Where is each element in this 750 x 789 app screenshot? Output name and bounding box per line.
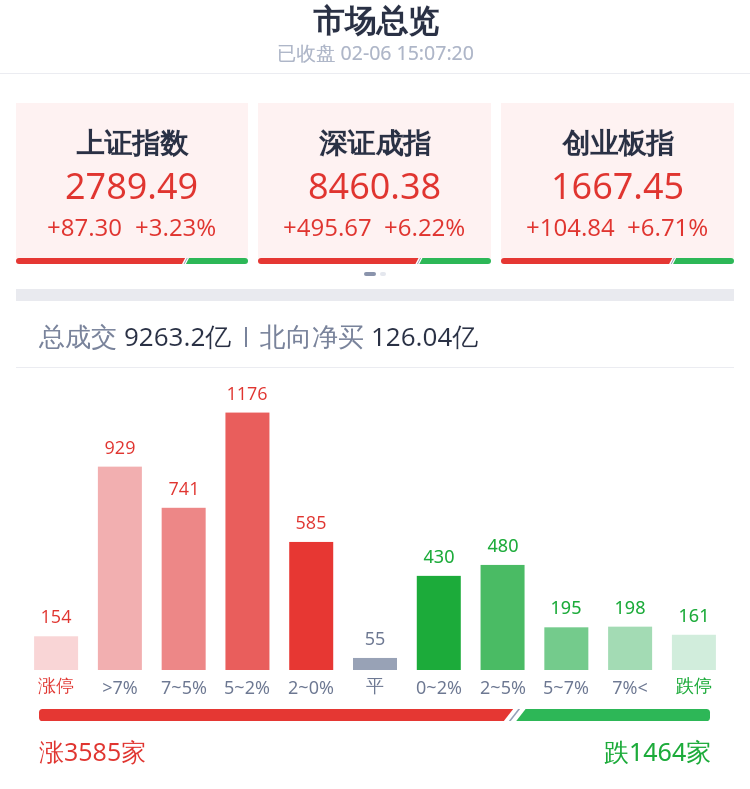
staticText: 8460.38	[308, 161, 442, 210]
staticText: 7%<	[585, 675, 675, 700]
staticText: 154	[11, 604, 101, 629]
button[interactable]: 7%<	[585, 675, 675, 700]
staticText: >7%	[75, 675, 165, 700]
button[interactable]: Page 2	[380, 272, 386, 276]
button[interactable]: 跌停	[649, 675, 739, 698]
staticText: +3.23%	[135, 210, 217, 243]
button[interactable]: 平	[330, 675, 420, 698]
staticText: 1176	[202, 381, 292, 406]
staticText: +87.30	[47, 210, 123, 243]
button[interactable]: 市场总览	[0, 0, 750, 73]
staticText: 总成交	[39, 318, 124, 354]
staticText: 2~5%	[458, 675, 548, 700]
staticText: 585	[266, 510, 356, 535]
staticText: 480	[458, 533, 548, 558]
staticText: 创业板指	[562, 126, 674, 161]
button[interactable]: 2~0%	[266, 675, 356, 700]
staticText: 0~2%	[394, 675, 484, 700]
staticText: 929	[75, 435, 165, 460]
staticText: 7~5%	[139, 675, 229, 700]
staticText: 2~0%	[266, 675, 356, 700]
button[interactable]: 2~5%	[458, 675, 548, 700]
staticText: 5~2%	[202, 675, 292, 700]
button[interactable]: 深证成指	[258, 103, 491, 264]
button[interactable]: 7~5%	[139, 675, 229, 700]
button[interactable]: 涨停	[11, 675, 101, 698]
staticText: 5~7%	[521, 675, 611, 700]
staticText: 市场总览	[313, 2, 439, 42]
staticText: 161	[649, 603, 739, 628]
staticText: 跌停	[649, 675, 739, 698]
button[interactable]: 总成交	[39, 318, 479, 354]
staticText: +6.22%	[384, 210, 466, 243]
button[interactable]: 5~2%	[202, 675, 292, 700]
staticText: 涨3585家	[39, 734, 147, 768]
staticText: 55	[330, 626, 420, 651]
staticText: 1667.45	[551, 161, 685, 210]
staticText: +6.71%	[627, 210, 709, 243]
staticText: 涨停	[11, 675, 101, 698]
button[interactable]: 涨跌家数比例	[39, 709, 710, 721]
button[interactable]: Page 1	[364, 272, 376, 276]
staticText: 深证成指	[319, 126, 431, 161]
staticText: 跌1464家	[604, 734, 712, 768]
staticText: 9263.2亿	[124, 318, 232, 354]
button[interactable]: 0~2%	[394, 675, 484, 700]
staticText: 上证指数	[76, 126, 188, 161]
button[interactable]: >7%	[75, 675, 165, 700]
staticText: 198	[585, 595, 675, 620]
staticText: +495.67	[283, 210, 372, 243]
staticText: 2789.49	[65, 161, 199, 210]
button[interactable]: 5~7%	[521, 675, 611, 700]
button[interactable]: 创业板指	[501, 103, 734, 264]
staticText: 126.04亿	[371, 318, 479, 354]
button[interactable]: 上证指数	[16, 103, 248, 264]
staticText: 已收盘 02-06 15:07:20	[277, 39, 474, 66]
staticText: 195	[521, 595, 611, 620]
staticText: 430	[394, 544, 484, 569]
staticText: 平	[330, 675, 420, 698]
staticText: +104.84	[526, 210, 615, 243]
staticText: 北向净买	[260, 318, 371, 354]
staticText: 741	[139, 476, 229, 501]
